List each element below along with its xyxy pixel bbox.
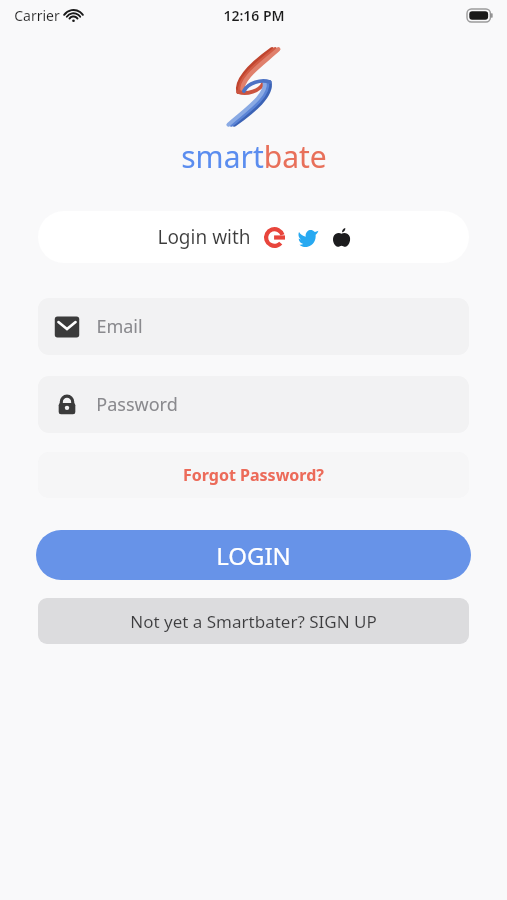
button[interactable]: Password: [38, 376, 469, 433]
staticText: 12:16 PM: [223, 6, 285, 25]
staticText: smartbate: [181, 136, 327, 177]
staticText: Not yet a Smartbater? SIGN UP: [130, 610, 377, 633]
staticText: LOGIN: [216, 539, 291, 572]
button[interactable]: LOGIN: [36, 530, 471, 580]
staticText: Carrier: [14, 6, 60, 25]
button[interactable]: Not yet a Smartbater? SIGN UP: [38, 598, 469, 644]
button[interactable]: Email: [38, 298, 469, 355]
staticText: Email: [96, 314, 143, 339]
button[interactable]: Forgot Password?: [38, 452, 469, 498]
staticText: Login with: [157, 224, 251, 250]
button[interactable]: Login with: [38, 211, 469, 263]
staticText: Password: [96, 392, 178, 417]
staticText: Forgot Password?: [183, 464, 324, 486]
